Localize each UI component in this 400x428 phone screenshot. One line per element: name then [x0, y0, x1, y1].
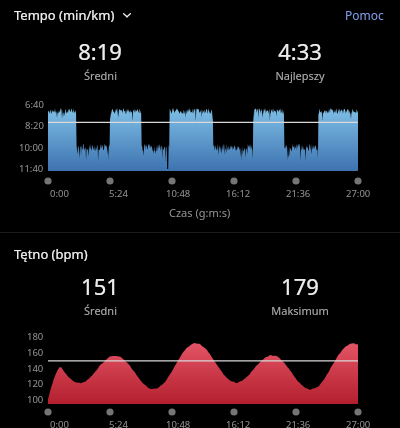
staticText: 10:48 [166, 187, 191, 200]
staticText: 100 [27, 393, 44, 406]
staticText: 11:40 [19, 162, 44, 175]
staticText: 27:00 [346, 418, 371, 428]
button[interactable]: Tempo (min/km) [14, 6, 133, 24]
staticText: Czas (g:m:s) [169, 205, 231, 220]
staticText: 179 [281, 271, 319, 301]
staticText: 5:24 [109, 418, 128, 428]
staticText: Średni [84, 68, 117, 83]
staticText: Maksimum [271, 303, 329, 318]
staticText: 151 [81, 271, 119, 301]
staticText: 16:12 [226, 418, 251, 428]
staticText: 0:00 [50, 187, 69, 200]
staticText: Najlepszy [275, 68, 325, 83]
staticText: 180 [27, 330, 44, 343]
staticText: 8:19 [78, 36, 122, 66]
staticText: 21:36 [286, 418, 311, 428]
staticText: 21:36 [286, 187, 311, 200]
staticText: 140 [27, 362, 44, 375]
other: Rozwiń [121, 9, 133, 21]
staticText: 8:20 [25, 119, 44, 132]
staticText: 120 [27, 377, 44, 390]
staticText: 160 [27, 346, 44, 359]
staticText: 0:00 [50, 418, 69, 428]
staticText: 10:00 [19, 141, 44, 154]
staticText: 5:24 [109, 187, 128, 200]
staticText: 6:40 [25, 98, 44, 111]
staticText: Średni [84, 303, 117, 318]
staticText: 10:48 [166, 418, 191, 428]
staticText: Tempo (min/km) [14, 6, 115, 24]
staticText: 27:00 [346, 187, 371, 200]
button[interactable]: Pomoc [341, 3, 388, 27]
staticText: 4:33 [278, 36, 322, 66]
staticText: 16:12 [226, 187, 251, 200]
staticText: Pomoc [345, 7, 384, 23]
staticText: Tętno (bpm) [14, 245, 88, 263]
